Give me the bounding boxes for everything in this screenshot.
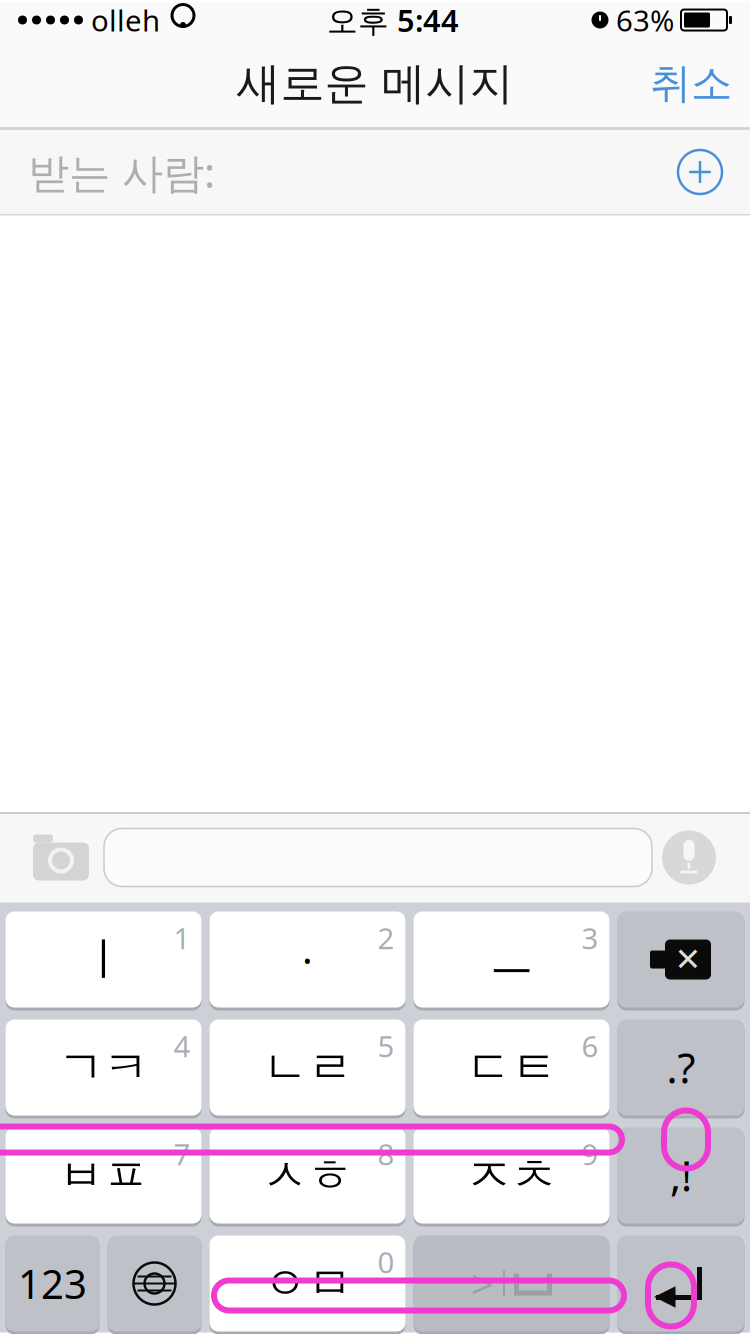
button[interactable]: 123 [5,1235,99,1333]
button[interactable]: ㅅㅎ [209,1127,405,1225]
staticText: olleh [91,0,160,39]
staticText: ,! [670,1148,692,1203]
staticText: · [302,933,313,986]
staticText: ㄷㅌ [466,1040,556,1095]
staticText: 63% [616,0,674,39]
staticText: ◀ [654,1279,676,1310]
staticText: ㅅㅎ [262,1148,352,1203]
button[interactable]: 키보드 전환 [107,1235,201,1333]
staticText: 8 [377,1134,394,1173]
staticText: ㅇㅁ [262,1256,352,1311]
button[interactable]: 카메라 [24,825,98,889]
button[interactable]: 마침표 물음표 [617,1019,744,1117]
button[interactable]: ㄴㄹ [209,1019,405,1117]
button[interactable]: ㅂㅍ [5,1127,201,1225]
staticText: 5 [377,1026,394,1065]
staticText: ㄱㅋ [58,1040,148,1095]
button[interactable]: 줄바꿈 [617,1235,744,1333]
button[interactable]: ㅈㅊ [413,1127,609,1225]
staticText: 1 [173,918,190,957]
staticText: 취소 [650,58,732,109]
button[interactable]: 취소 [632,44,750,123]
staticText: ㅈㅊ [466,1148,556,1203]
button[interactable]: ㅣ [5,911,201,1009]
staticText: 0 [377,1242,394,1281]
staticText: ㅂㅍ [58,1148,148,1203]
staticText: 받는 사람: [28,145,215,199]
button[interactable]: 스페이스 [413,1235,609,1333]
staticText: .? [666,1040,695,1095]
staticText: 6 [581,1026,598,1065]
staticText: 3 [581,918,598,957]
button[interactable]: ㄷㅌ [413,1019,609,1117]
staticText: 오후 5:44 [327,0,459,40]
staticText: 2 [377,918,394,957]
button[interactable]: 연락처 추가 [668,140,732,204]
staticText: 9 [581,1134,598,1173]
button[interactable]: ㅡ [413,911,609,1009]
button[interactable]: 음성 입력 [652,825,726,889]
button[interactable]: 쉼표 느낌표 [617,1127,744,1225]
staticText: ㅡ [489,932,534,987]
staticText: 새로운 메시지 [236,56,513,110]
button[interactable]: 삭제 [617,911,744,1009]
button[interactable]: ㄱㅋ [5,1019,201,1117]
staticText: ✕ [674,941,701,978]
staticText: 123 [18,1257,87,1310]
button[interactable]: ㅇㅁ [209,1235,405,1333]
staticText: > [471,1257,494,1310]
staticText: ㄴㄹ [262,1040,352,1095]
staticText: 4 [173,1026,190,1065]
staticText: 7 [173,1134,190,1173]
staticText: ㅣ [81,932,126,987]
button[interactable]: · [209,911,405,1009]
